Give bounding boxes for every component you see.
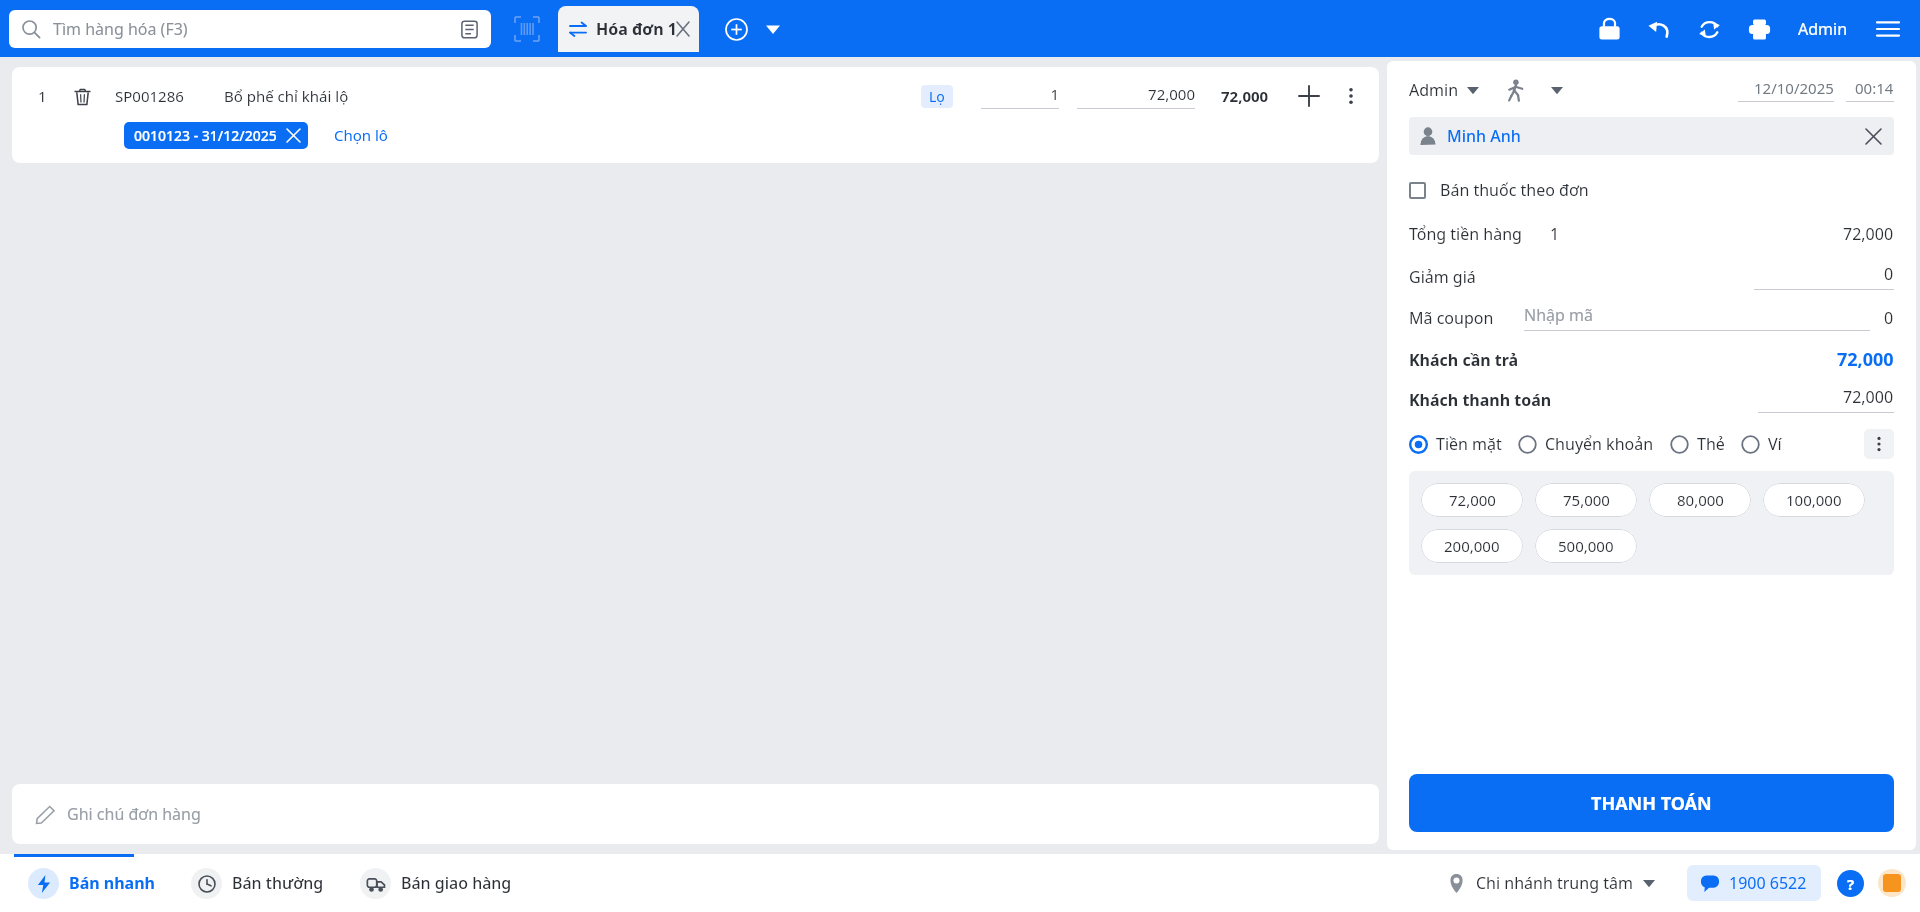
button[interactable]: Đóng hóa đơn — [677, 22, 689, 36]
staticText: 100,000 — [1786, 490, 1842, 510]
button[interactable]: Trợ giúp — [1837, 870, 1864, 897]
button[interactable]: 100,000 — [1763, 483, 1865, 517]
staticText: Bán giao hàng — [401, 872, 512, 894]
staticText: 80,000 — [1677, 490, 1724, 510]
staticText: Bán nhanh — [69, 872, 155, 894]
button[interactable]: 75,000 — [1535, 483, 1637, 517]
button[interactable]: THANH TOÁN — [1409, 774, 1894, 832]
staticText: 1 — [1550, 223, 1560, 245]
button[interactable]: 72,000 — [1421, 483, 1523, 517]
staticText: Hóa đơn 1 — [596, 18, 677, 40]
staticText: 72,000 — [1837, 347, 1894, 372]
staticText: Khách thanh toán — [1409, 389, 1552, 411]
staticText: Tiền mặt — [1436, 433, 1502, 455]
button[interactable]: Phản hồi — [1878, 869, 1906, 897]
staticText: Ví — [1768, 433, 1782, 455]
button[interactable]: Minh Anh — [1409, 117, 1894, 155]
staticText: Mã coupon — [1409, 307, 1494, 329]
staticText: Tổng tiền hàng — [1409, 223, 1522, 245]
button[interactable]: Bán thuốc theo đơn — [1409, 175, 1589, 205]
button[interactable]: Tìm hàng hóa (F3) — [9, 10, 491, 48]
staticText: 0 — [1884, 307, 1894, 329]
button[interactable]: 72,000 — [1077, 84, 1195, 109]
button[interactable]: 1 — [981, 84, 1059, 109]
button[interactable]: 1900 6522 — [1687, 865, 1821, 901]
button[interactable]: Khóa — [1588, 8, 1630, 50]
button[interactable]: 72,000 — [1758, 386, 1894, 413]
button[interactable]: Thêm hóa đơn — [719, 12, 753, 46]
staticText: Lọ — [929, 87, 945, 106]
button[interactable]: 500,000 — [1535, 529, 1637, 563]
staticText: SP001286 — [115, 86, 184, 106]
button[interactable]: Bán giao hàng — [342, 854, 530, 912]
button[interactable]: Menu — [1868, 9, 1908, 49]
button[interactable]: Bán nhanh — [0, 854, 173, 912]
staticText: Thẻ — [1697, 433, 1725, 455]
button[interactable]: Chi nhánh trung tâm — [1441, 864, 1661, 902]
staticText: 1 — [981, 84, 1059, 104]
button[interactable]: 200,000 — [1421, 529, 1523, 563]
staticText: 72,000 — [1843, 223, 1894, 245]
button[interactable]: Nhập mã — [1524, 304, 1870, 331]
button[interactable]: Đồng bộ — [1688, 8, 1730, 50]
staticText: 72,000 — [1449, 490, 1496, 510]
button[interactable]: Chuyển khoản — [1518, 430, 1654, 458]
staticText: Bán thường — [232, 872, 324, 894]
button[interactable]: Danh sách hóa đơn — [760, 16, 786, 42]
button[interactable]: Hóa đơn 1 — [558, 6, 699, 52]
button[interactable]: Chọn kênh — [1545, 78, 1569, 102]
button[interactable]: Thẻ — [1670, 430, 1725, 458]
button[interactable]: Tiền mặt — [1409, 430, 1502, 458]
staticText: 0010123 - 31/12/2025 — [134, 126, 277, 145]
staticText: 75,000 — [1563, 490, 1610, 510]
staticText: Bán thuốc theo đơn — [1440, 179, 1589, 201]
button[interactable]: Bỏ khách hàng — [1856, 119, 1890, 153]
staticText: 72,000 — [1221, 86, 1269, 106]
staticText: 72,000 — [1077, 84, 1195, 104]
staticText: Giảm giá — [1409, 266, 1476, 288]
staticText: ? — [1847, 874, 1855, 894]
staticText: Chi nhánh trung tâm — [1476, 872, 1633, 894]
staticText: Tìm hàng hóa (F3) — [53, 18, 460, 40]
button[interactable]: Xóa — [69, 83, 95, 109]
button[interactable]: Chọn lô — [330, 121, 392, 149]
button[interactable]: Hoàn tác — [1638, 8, 1680, 50]
staticText: Khách cần trả — [1409, 349, 1519, 371]
staticText: Chọn lô — [334, 125, 388, 145]
staticText: 1900 6522 — [1729, 872, 1807, 894]
button[interactable]: Bán thường — [173, 854, 342, 912]
button[interactable]: Ví — [1741, 430, 1782, 458]
button[interactable]: In — [1738, 8, 1780, 50]
staticText: 1 — [38, 86, 47, 106]
staticText: 500,000 — [1558, 536, 1614, 556]
button[interactable]: Phương thức khác — [1864, 429, 1894, 459]
button[interactable]: 1 — [12, 67, 1379, 163]
button[interactable]: Thêm — [1295, 82, 1323, 110]
staticText: Ghi chú đơn hàng — [67, 803, 201, 825]
button[interactable]: 80,000 — [1649, 483, 1751, 517]
button[interactable]: 0 — [1754, 263, 1894, 290]
staticText: 72,000 — [1843, 386, 1894, 408]
button[interactable]: Admin — [1409, 75, 1479, 105]
staticText: THANH TOÁN — [1591, 791, 1712, 816]
staticText: 00:14 — [1855, 78, 1894, 98]
button[interactable]: Quét mã vạch — [507, 9, 547, 49]
staticText: Nhập mã — [1524, 304, 1593, 326]
staticText: Admin — [1409, 79, 1459, 101]
staticText: Admin — [1798, 18, 1848, 40]
button[interactable]: Kênh bán — [1501, 76, 1529, 104]
staticText: Bổ phế chỉ khái lộ — [224, 86, 349, 106]
staticText: 12/10/2025 — [1754, 78, 1834, 98]
button[interactable]: Admin — [1794, 12, 1852, 46]
staticText: Chuyển khoản — [1545, 433, 1654, 455]
staticText: 0 — [1884, 263, 1894, 285]
button[interactable]: Ghi chú đơn hàng — [12, 784, 1379, 844]
button[interactable]: Lọ — [921, 85, 953, 108]
button[interactable]: 0010123 - 31/12/2025 — [124, 122, 308, 149]
staticText: Minh Anh — [1447, 125, 1521, 147]
staticText: 200,000 — [1444, 536, 1500, 556]
button[interactable]: Tùy chọn — [1337, 82, 1365, 110]
